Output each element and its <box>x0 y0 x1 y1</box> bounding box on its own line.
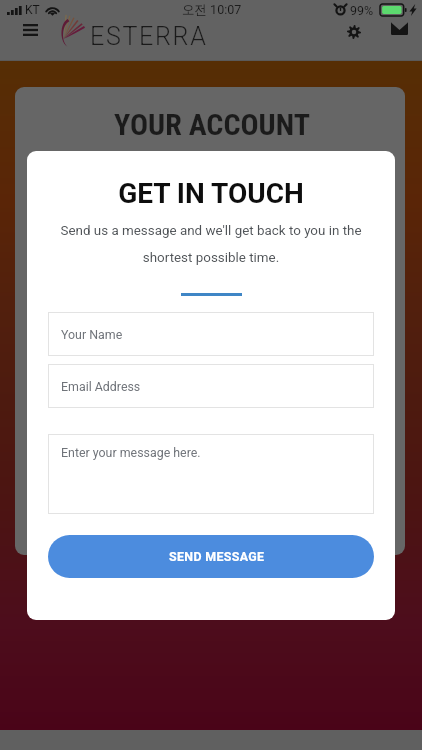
staticText: 99% <box>350 3 374 18</box>
staticText: SEND MESSAGE <box>169 549 265 564</box>
staticText: Send us a message and we'll get back to … <box>54 223 368 266</box>
button[interactable]: Open navigation menu <box>12 11 49 48</box>
staticText: Email Address <box>61 379 141 394</box>
button[interactable]: Settings <box>335 13 372 50</box>
staticText: KT <box>25 3 40 17</box>
staticText: ESTERRA <box>90 22 208 51</box>
button[interactable]: Enter your message here. <box>48 434 374 514</box>
button[interactable]: Email Address <box>48 364 374 408</box>
staticText: GET IN TOUCH <box>27 177 395 210</box>
button[interactable]: SEND MESSAGE <box>48 535 374 578</box>
staticText: Your Name <box>61 327 123 342</box>
button[interactable]: Mail <box>381 10 418 47</box>
button[interactable]: Your Name <box>48 312 374 356</box>
staticText: YOUR ACCOUNT <box>17 107 405 142</box>
staticText: 오전 10:07 <box>182 2 242 18</box>
staticText: Enter your message here. <box>61 445 201 460</box>
